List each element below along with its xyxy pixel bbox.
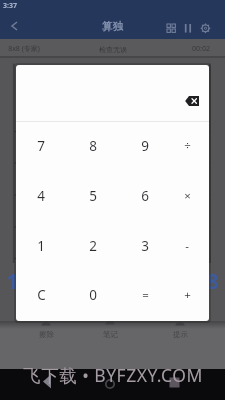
staticText: C [37, 286, 46, 304]
staticText: 擦除 [39, 330, 54, 339]
staticText: 提示 [173, 330, 188, 339]
staticText: 8x8 (专家) [8, 44, 40, 54]
staticText: + [184, 287, 191, 303]
button[interactable]: C [27, 285, 55, 305]
staticText: 8 [206, 265, 219, 295]
button[interactable] [8, 20, 20, 32]
staticText: 2 [89, 237, 97, 255]
button[interactable]: 4 [27, 186, 55, 206]
staticText: 检查无误 [99, 45, 127, 54]
staticText: = [142, 287, 149, 303]
staticText: 4 [37, 187, 45, 205]
staticText: 00:02 [192, 44, 210, 54]
button[interactable]: 6 [131, 186, 159, 206]
staticText: × [184, 188, 191, 204]
button[interactable] [160, 16, 184, 40]
staticText: 1 [6, 265, 19, 295]
staticText: 3:37 [3, 1, 17, 11]
staticText: 0 [89, 286, 97, 304]
button[interactable]: 笔记 [90, 329, 130, 340]
button[interactable]: 3 [131, 236, 159, 256]
staticText: 8 [89, 137, 97, 155]
button[interactable]: × [173, 186, 201, 206]
button[interactable]: 9 [131, 136, 159, 156]
button[interactable]: 0 [79, 285, 107, 305]
staticText: 飞下载 • BYFZXY.COM [23, 363, 203, 387]
button[interactable]: 提示 [160, 329, 200, 340]
staticText: ÷ [184, 138, 191, 154]
staticText: - [185, 238, 189, 254]
button[interactable]: 擦除 [26, 329, 66, 340]
button[interactable]: 2 [79, 236, 107, 256]
staticText: 7 [37, 137, 45, 155]
button[interactable]: 8 [79, 136, 107, 156]
staticText: 3 [141, 237, 149, 255]
button[interactable]: + [173, 285, 201, 305]
button[interactable]: 5 [79, 186, 107, 206]
staticText: 1 [37, 237, 45, 255]
button[interactable]: = [131, 285, 159, 305]
button[interactable]: - [173, 236, 201, 256]
staticText: 6 [141, 187, 149, 205]
button[interactable]: ÷ [173, 136, 201, 156]
button[interactable] [196, 16, 220, 40]
button[interactable]: 1 [27, 236, 55, 256]
button[interactable]: 7 [27, 136, 55, 156]
staticText: 9 [141, 137, 149, 155]
button[interactable] [183, 93, 203, 110]
staticText: 笔记 [103, 330, 118, 339]
staticText: 5 [89, 187, 97, 205]
staticText: 算独 [102, 20, 123, 33]
button[interactable] [178, 16, 198, 40]
